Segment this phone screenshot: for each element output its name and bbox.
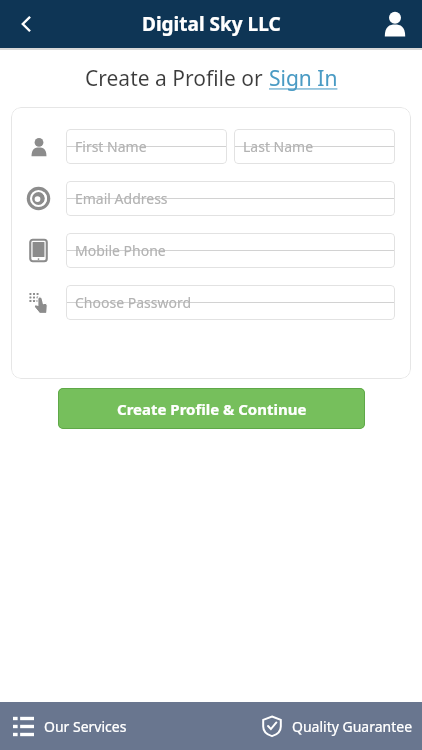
button[interactable]: First Name: [66, 129, 227, 164]
staticText: First Name: [75, 137, 147, 156]
button[interactable]: Back: [0, 0, 52, 48]
button[interactable]: Create Profile & Continue: [58, 388, 365, 429]
staticText: Sign In: [269, 64, 338, 93]
staticText: Email Address: [75, 189, 168, 208]
button[interactable]: Mobile Phone: [66, 233, 395, 268]
button[interactable]: Choose Password: [66, 285, 395, 320]
staticText: Choose Password: [75, 293, 192, 312]
button[interactable]: Quality Guarantee: [211, 702, 422, 750]
button[interactable]: Last Name: [234, 129, 395, 164]
button[interactable]: Our Services: [0, 702, 211, 750]
staticText: Quality Guarantee: [292, 717, 413, 736]
staticText: Last Name: [243, 137, 314, 156]
button[interactable]: Email Address: [66, 181, 395, 216]
staticText: Mobile Phone: [75, 241, 166, 260]
staticText: Digital Sky LLC: [142, 11, 281, 37]
button[interactable]: Account: [368, 0, 422, 48]
staticText: Our Services: [44, 717, 127, 736]
button[interactable]: Sign In: [269, 64, 338, 93]
staticText: Create a Profile or: [85, 64, 269, 93]
staticText: Create Profile & Continue: [117, 399, 307, 419]
